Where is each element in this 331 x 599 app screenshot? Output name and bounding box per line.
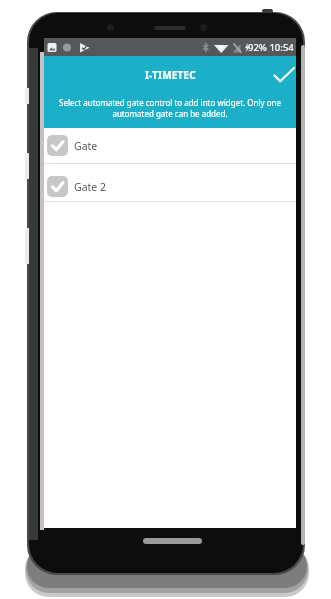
button[interactable]	[268, 60, 296, 88]
button[interactable]: Gate	[44, 128, 296, 163]
staticText: Gate	[74, 139, 98, 153]
staticText: Gate 2	[74, 180, 106, 194]
staticText: 92% 10:54	[248, 41, 294, 54]
button[interactable]: Gate 2	[44, 164, 296, 201]
staticText: I-TIMETEC	[145, 68, 196, 82]
staticText: Select automated gate control to add int…	[44, 97, 296, 119]
